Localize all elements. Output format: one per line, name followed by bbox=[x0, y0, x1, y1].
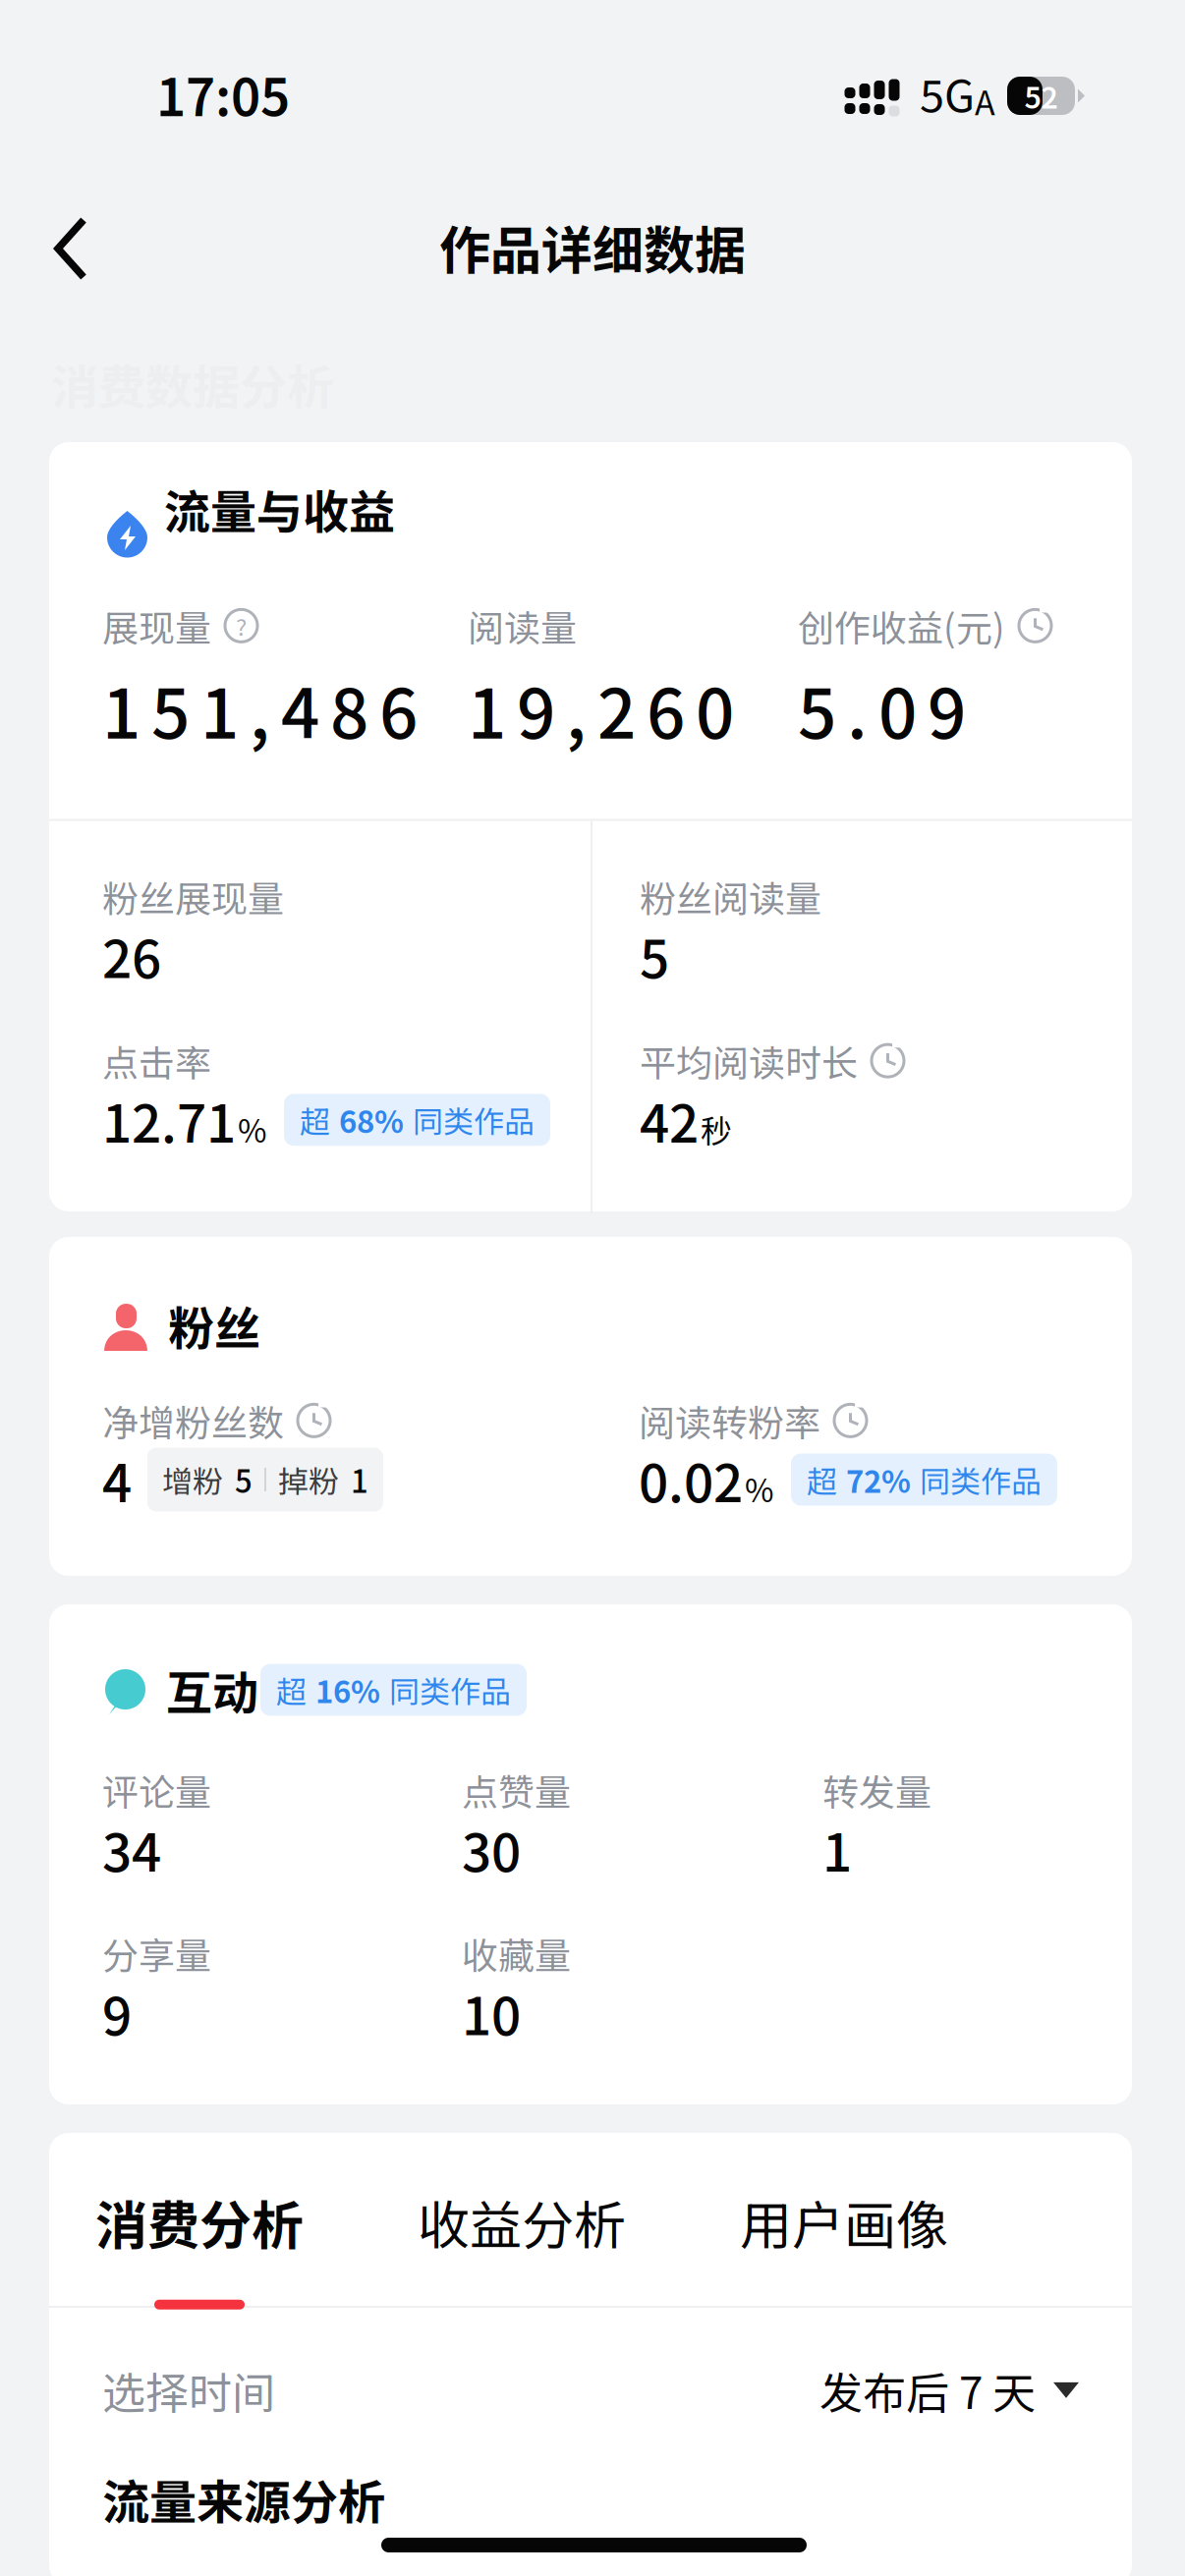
staticText: 5 bbox=[235, 1458, 253, 1502]
staticText: 超 bbox=[807, 1458, 837, 1502]
button[interactable]: 用户画像 bbox=[740, 2184, 1062, 2309]
staticText: 分享量 bbox=[102, 1927, 211, 1980]
staticText: % bbox=[745, 1466, 773, 1511]
staticText: 同类作品 bbox=[920, 1458, 1042, 1502]
staticText: 转发量 bbox=[822, 1764, 931, 1816]
staticText: 1 bbox=[822, 1811, 852, 1887]
staticText: 收藏量 bbox=[462, 1927, 571, 1980]
staticText: 5G bbox=[920, 61, 975, 125]
staticText: 16% bbox=[315, 1668, 380, 1712]
staticText: 消费分析 bbox=[95, 2184, 304, 2259]
staticText: 点击率 bbox=[102, 1034, 211, 1087]
staticText: 阅读量 bbox=[468, 599, 577, 652]
staticText: 粉丝 bbox=[168, 1292, 260, 1359]
staticText: 52 bbox=[1024, 74, 1058, 117]
staticText: 9 bbox=[102, 1975, 132, 2050]
staticText: 1 bbox=[351, 1458, 368, 1502]
staticText: 26 bbox=[102, 918, 161, 993]
staticText: 超 bbox=[276, 1668, 307, 1712]
staticText: 用户画像 bbox=[740, 2184, 948, 2259]
staticText: 阅读转粉率 bbox=[639, 1394, 820, 1447]
staticText: 评论量 bbox=[102, 1764, 211, 1816]
staticText: 5.09 bbox=[798, 660, 966, 758]
staticText: 19,260 bbox=[468, 660, 734, 758]
staticText: % bbox=[238, 1106, 266, 1152]
staticText: ? bbox=[236, 609, 247, 643]
button[interactable]: 收益分析 bbox=[418, 2184, 740, 2309]
staticText: 掉粉 bbox=[278, 1458, 339, 1502]
staticText: 10 bbox=[462, 1975, 521, 2050]
staticText: 作品详细数据 bbox=[439, 210, 746, 284]
staticText: 流量来源分析 bbox=[102, 2465, 385, 2533]
staticText: 发布后 7 天 bbox=[819, 2359, 1036, 2421]
staticText: 流量与收益 bbox=[164, 476, 395, 542]
staticText: A bbox=[975, 77, 995, 125]
staticText: 5 bbox=[640, 918, 669, 993]
staticText: 4 bbox=[102, 1442, 132, 1517]
staticText: 0.02 bbox=[639, 1442, 743, 1517]
staticText: 展现量 bbox=[102, 599, 211, 652]
staticText: 68% bbox=[339, 1098, 404, 1142]
staticText: 收益分析 bbox=[418, 2184, 626, 2259]
staticText: 同类作品 bbox=[413, 1098, 535, 1142]
staticText: 42 bbox=[640, 1082, 699, 1157]
staticText: 151,486 bbox=[102, 660, 418, 758]
staticText: 创作收益(元) bbox=[798, 599, 1005, 652]
button[interactable]: 发布后 7 天 bbox=[819, 2359, 1079, 2421]
staticText: 平均阅读时长 bbox=[640, 1034, 858, 1087]
staticText: 超 bbox=[300, 1098, 330, 1142]
staticText: 粉丝阅读量 bbox=[640, 870, 821, 923]
staticText: 互动 bbox=[166, 1656, 258, 1723]
staticText: 秒 bbox=[701, 1106, 732, 1152]
staticText: 12.71 bbox=[102, 1082, 236, 1157]
staticText: 34 bbox=[102, 1811, 161, 1887]
staticText: 净增粉丝数 bbox=[102, 1394, 284, 1447]
staticText: 17:05 bbox=[156, 57, 290, 131]
button[interactable]: Back bbox=[28, 190, 114, 308]
staticText: 同类作品 bbox=[389, 1668, 511, 1712]
staticText: 点赞量 bbox=[462, 1764, 571, 1816]
button[interactable]: 消费分析 bbox=[95, 2184, 418, 2309]
staticText: 30 bbox=[462, 1811, 521, 1887]
staticText: 选择时间 bbox=[102, 2359, 275, 2421]
staticText: 粉丝展现量 bbox=[102, 870, 284, 923]
staticText: 增粉 bbox=[162, 1458, 223, 1502]
staticText: 72% bbox=[846, 1458, 911, 1502]
